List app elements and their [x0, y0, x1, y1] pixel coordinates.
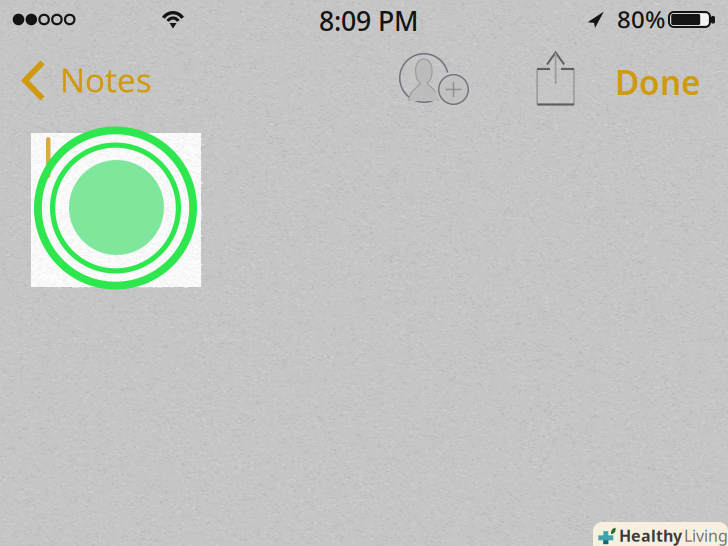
staticText: Healthy	[619, 525, 682, 546]
staticText: 8:09 PM	[319, 3, 418, 38]
staticText: Done	[615, 60, 701, 104]
button[interactable]: Add People	[389, 43, 481, 115]
button[interactable]: Share	[526, 39, 588, 117]
button[interactable]: Notes	[0, 45, 166, 114]
staticText: Notes	[60, 57, 152, 102]
staticText: 80%	[617, 3, 665, 35]
staticText: Living	[684, 525, 728, 546]
button[interactable]: Done	[599, 48, 728, 116]
